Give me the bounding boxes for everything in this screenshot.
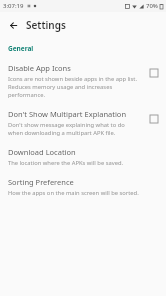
staticText: General (8, 44, 34, 53)
button[interactable]: Disable App Icons (147, 66, 161, 80)
staticText: The location where the APKs will be save… (8, 159, 124, 167)
staticText: Download Location (8, 147, 76, 157)
staticText: Settings (26, 18, 66, 32)
staticText: Icons are not shown beside apps in the a… (8, 75, 141, 99)
staticText: Sorting Preference (8, 177, 74, 187)
staticText: Don't Show Multipart Explanation (8, 109, 127, 119)
button[interactable]: Don't Show Multipart Explanation (147, 112, 161, 126)
staticText: How the apps on the main screen will be … (8, 189, 139, 197)
button[interactable]: Sorting Preference (0, 171, 166, 201)
staticText: 70% (146, 2, 158, 10)
staticText: Disable App Icons (8, 63, 71, 73)
button[interactable]: Don't Show Multipart Explanation (0, 103, 166, 141)
button[interactable]: Back (4, 16, 22, 34)
staticText: Don't show message explaining what to do… (8, 121, 141, 137)
staticText: 3:07:19 (3, 2, 24, 10)
button[interactable]: Disable App Icons (0, 57, 166, 103)
button[interactable]: Download Location (0, 141, 166, 171)
